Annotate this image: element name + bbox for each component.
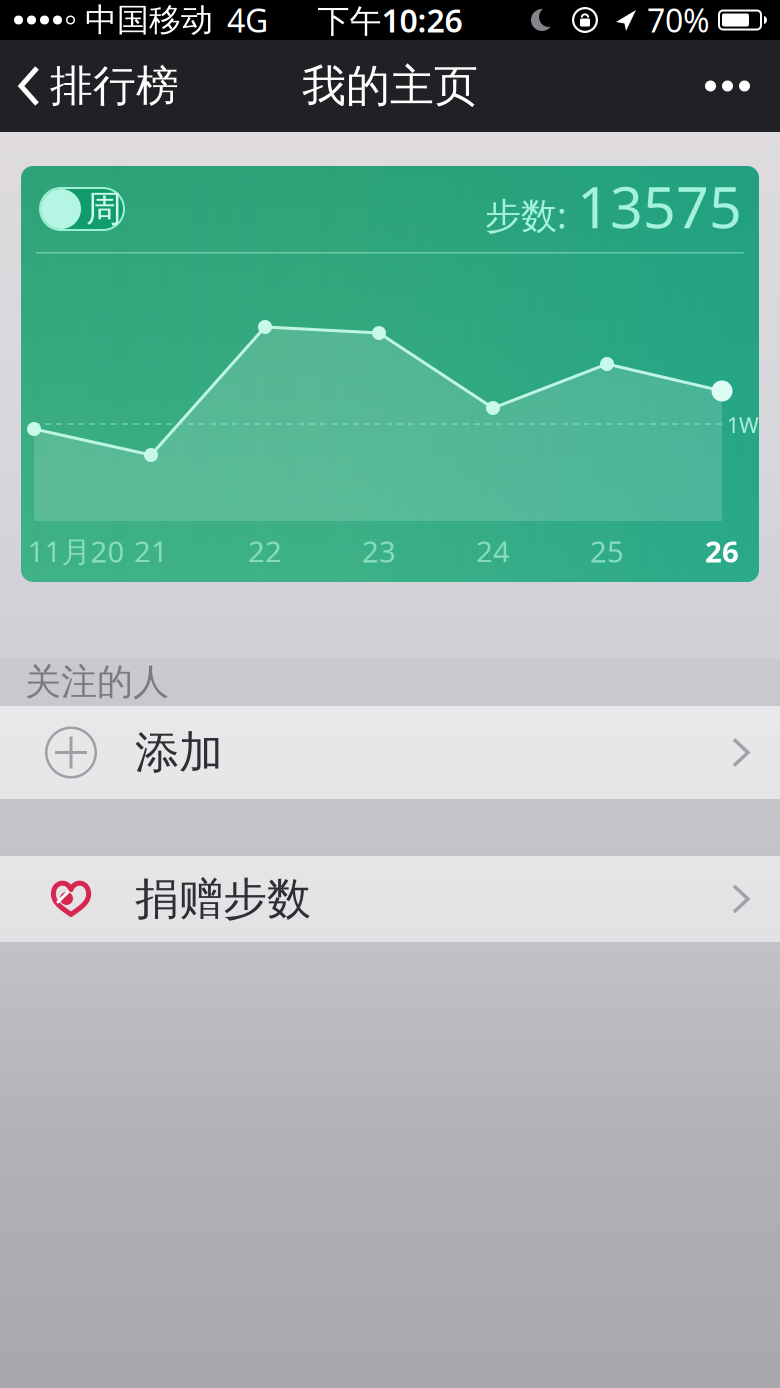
staticText: 22 [248, 531, 282, 570]
button[interactable]: 返回排行榜 [0, 40, 179, 132]
staticText: 排行榜 [50, 60, 179, 112]
staticText: 23 [362, 531, 396, 570]
staticText: 24 [476, 531, 510, 570]
button[interactable]: 按周显示 [39, 187, 125, 231]
staticText: 下午10:26 [317, 0, 462, 41]
staticText: 周 [86, 187, 122, 231]
staticText: 中国移动 [85, 0, 213, 40]
staticText: 4G [227, 0, 268, 41]
staticText: 21 [134, 531, 168, 570]
staticText: 关注的人 [25, 660, 169, 704]
staticText: 1W [727, 411, 759, 439]
staticText: 捐赠步数 [135, 872, 311, 926]
staticText: 步数: [485, 191, 567, 239]
staticText: 13575 [577, 168, 742, 244]
button[interactable]: 捐赠步数 [0, 856, 780, 942]
staticText: 11月20 [27, 531, 124, 570]
staticText: 25 [590, 531, 624, 570]
staticText: 我的主页 [302, 59, 478, 113]
staticText: 添加 [135, 725, 223, 779]
staticText: 26 [705, 531, 739, 570]
button[interactable]: 更多 [705, 40, 780, 132]
staticText: 70% [647, 0, 710, 41]
button[interactable]: 添加关注的人 [0, 706, 780, 799]
